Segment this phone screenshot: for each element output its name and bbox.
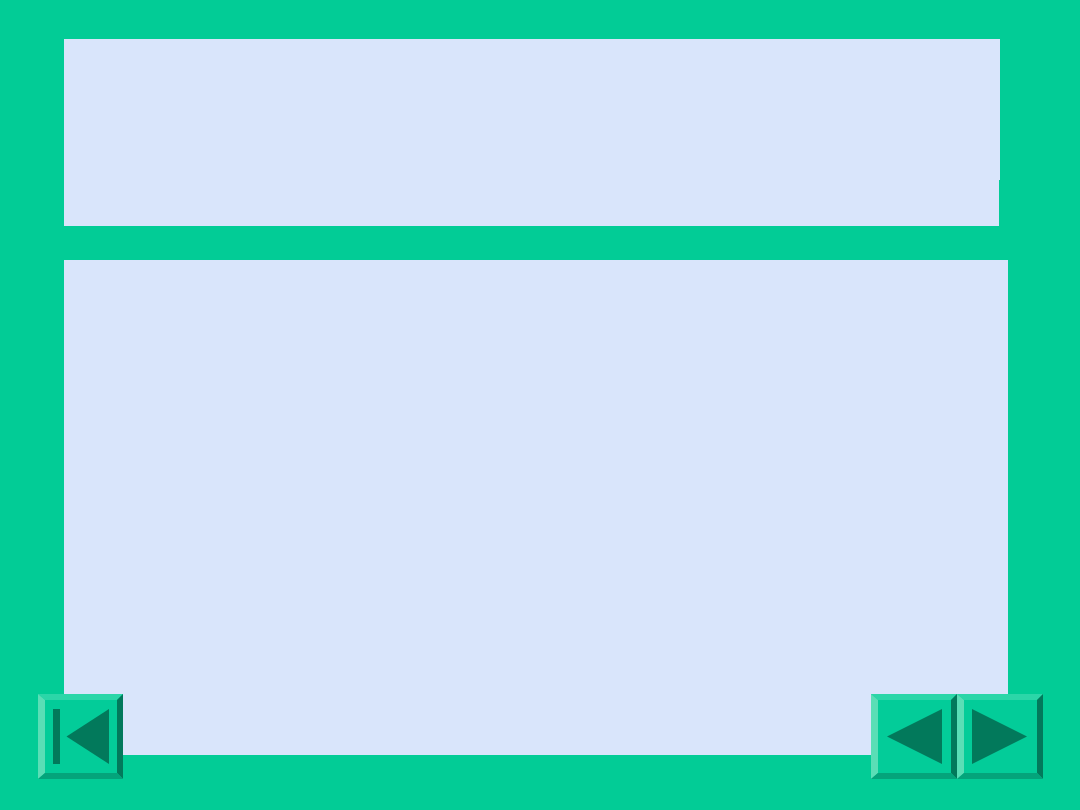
button[interactable]: Next slide [957,694,1043,779]
button[interactable] [64,260,1008,755]
button[interactable]: First slide [38,694,123,779]
button[interactable]: Previous slide [871,694,957,779]
